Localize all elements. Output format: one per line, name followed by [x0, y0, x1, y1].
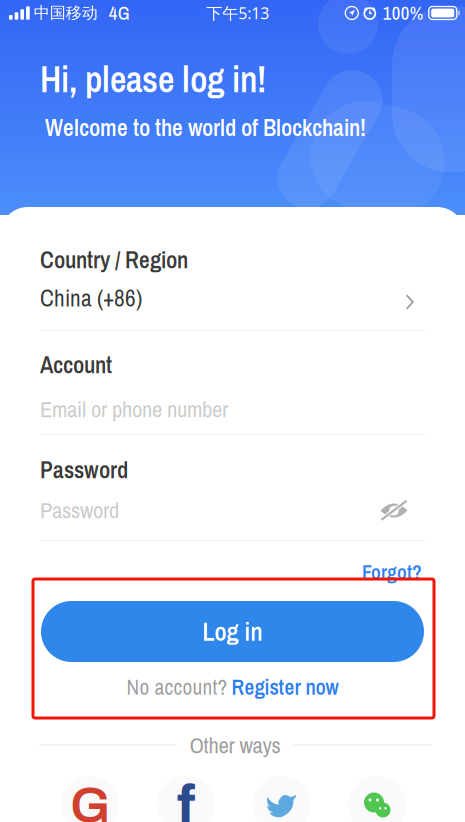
- staticText: Email or phone number: [40, 394, 228, 424]
- staticText: f: [177, 774, 195, 822]
- button[interactable]: Register now: [231, 673, 338, 701]
- button[interactable]: Show password: [380, 499, 408, 522]
- button[interactable]: Email or phone number: [40, 395, 425, 423]
- button[interactable]: Sign in with Twitter: [252, 776, 310, 822]
- staticText: Log in: [202, 614, 262, 648]
- staticText: Other ways: [189, 730, 280, 760]
- staticText: G: [70, 777, 110, 822]
- staticText: Password: [40, 495, 119, 525]
- button[interactable]: Password: [40, 496, 380, 524]
- staticText: No account?: [126, 673, 227, 701]
- button[interactable]: Forgot?: [350, 560, 422, 584]
- staticText: China (+86): [40, 282, 142, 314]
- staticText: Welcome to the world of Blockchain!: [45, 112, 366, 143]
- staticText: Forgot?: [362, 558, 422, 585]
- staticText: 4G: [109, 0, 130, 25]
- staticText: 下午5:13: [206, 2, 269, 24]
- staticText: Register now: [231, 673, 338, 701]
- staticText: Country / Region: [40, 244, 188, 275]
- staticText: Password: [40, 454, 128, 485]
- staticText: 中国移动: [34, 3, 98, 23]
- button[interactable]: Sign in with WeChat: [348, 776, 406, 822]
- button[interactable]: Log in: [41, 601, 424, 662]
- staticText: 100%: [383, 0, 424, 25]
- staticText: Account: [40, 349, 112, 380]
- button[interactable]: Sign in with Facebook: [157, 776, 215, 822]
- staticText: Hi, please log in!: [40, 55, 266, 103]
- button[interactable]: China (+86): [40, 283, 425, 313]
- button[interactable]: Sign in with Google: [61, 776, 119, 822]
